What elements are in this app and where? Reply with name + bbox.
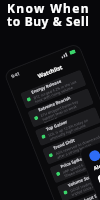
button[interactable]: Energy Release bbox=[20, 69, 87, 109]
staticText: to Buy & Sell bbox=[7, 13, 90, 29]
staticText: Breakout Signal bbox=[75, 189, 100, 200]
button[interactable]: Top Gainer bbox=[35, 107, 100, 146]
button[interactable]: Trend Shift bbox=[42, 125, 100, 165]
staticText: Know When bbox=[7, 0, 90, 16]
staticText: Volume Surge bbox=[67, 173, 96, 189]
staticText: Watchlist bbox=[37, 63, 63, 79]
staticText: LTC broke above its long term resistance… bbox=[77, 189, 100, 200]
staticText: DOGE trading volume has tripled since mi… bbox=[69, 170, 100, 197]
staticText: Price Spike Alert bbox=[60, 152, 95, 170]
staticText: ADA reversed its downtrend after a stron… bbox=[55, 133, 100, 160]
button[interactable]: Price Spike Alert bbox=[49, 144, 100, 183]
staticText: Energy Release bbox=[31, 78, 63, 96]
staticText: Extreme Bearish bbox=[37, 95, 72, 113]
button[interactable]: Breakout Signal bbox=[64, 181, 100, 200]
staticText: BTC surged 4.2% in the last hour with ri… bbox=[33, 77, 83, 104]
button[interactable]: Extreme Bearish bbox=[27, 88, 94, 128]
staticText: SOL is up 12.8% today on unusually high … bbox=[47, 114, 98, 141]
staticText: 9:41 bbox=[10, 70, 21, 79]
staticText: Alerts bbox=[93, 160, 100, 172]
staticText: Top Gainer bbox=[45, 119, 69, 133]
staticText: ETH dropped below key support level on w… bbox=[40, 95, 91, 124]
staticText: XRP spiked 6.1% in the last fifteen minu… bbox=[62, 151, 100, 179]
button[interactable]: Volume Surge bbox=[57, 162, 100, 200]
staticText: Trend Shift bbox=[53, 138, 76, 152]
